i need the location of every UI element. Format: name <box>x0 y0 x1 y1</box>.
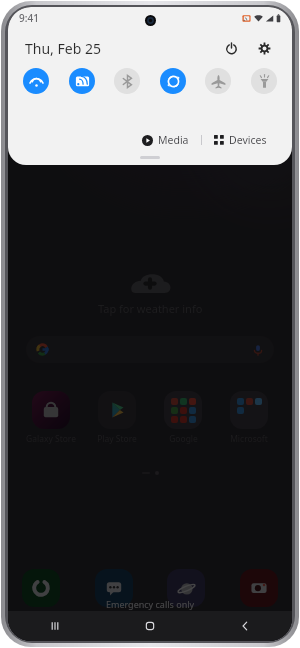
staticText: Tap for weather info <box>98 301 203 316</box>
button[interactable]: Devices <box>211 131 270 149</box>
button[interactable]: Google search <box>26 336 274 363</box>
button[interactable]: Wi-Fi <box>23 68 49 94</box>
button[interactable]: Expand quick settings <box>140 156 160 159</box>
staticText: Google <box>169 433 198 445</box>
button[interactable]: Bluetooth <box>114 68 140 94</box>
button[interactable]: Messages <box>95 569 133 607</box>
staticText: Galaxy Store <box>26 433 76 445</box>
button[interactable]: Smart View <box>69 68 95 94</box>
button[interactable]: Play Store <box>88 391 146 445</box>
button[interactable]: Flashlight <box>251 68 277 94</box>
button[interactable]: Thu, Feb 25 <box>25 39 101 58</box>
button[interactable]: Phone <box>22 569 60 607</box>
button[interactable]: Power off <box>220 37 242 59</box>
button[interactable]: Back <box>197 611 292 641</box>
button[interactable]: Camera <box>240 569 278 607</box>
button[interactable]: Galaxy Store <box>22 391 80 445</box>
button[interactable]: Home <box>102 611 197 641</box>
button[interactable]: Airplane mode <box>205 68 231 94</box>
staticText: Emergency calls only <box>106 598 195 610</box>
button[interactable]: Microsoft <box>220 391 278 445</box>
button[interactable]: Google <box>154 391 212 445</box>
staticText: Devices <box>229 133 267 147</box>
staticText: Microsoft <box>230 433 268 445</box>
staticText: 9:41 <box>19 11 39 25</box>
button[interactable]: Media <box>139 131 192 149</box>
button[interactable]: Settings <box>253 37 275 59</box>
staticText: Media <box>158 133 189 147</box>
button[interactable]: Recent apps <box>8 611 102 641</box>
button[interactable]: Auto sync <box>160 68 186 94</box>
staticText: Play Store <box>97 433 137 445</box>
button[interactable]: Internet <box>167 569 205 607</box>
